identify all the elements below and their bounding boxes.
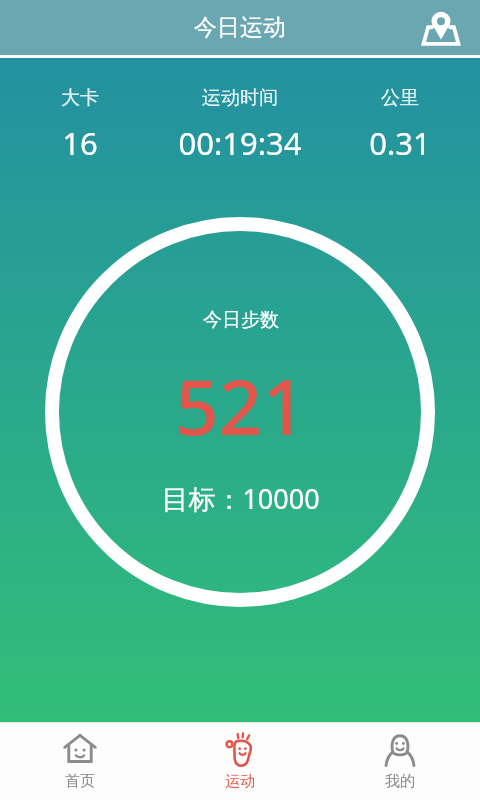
staticText: 公里 — [381, 86, 419, 110]
staticText: 521 — [175, 354, 306, 458]
button[interactable]: 运动 — [160, 723, 320, 800]
button[interactable]: 运动时间 — [160, 86, 320, 164]
button[interactable]: 我的 — [320, 723, 480, 800]
staticText: 大卡 — [61, 86, 99, 110]
staticText: 00:19:34 — [178, 122, 302, 164]
staticText: 16 — [62, 122, 98, 164]
staticText: 今日步数 — [203, 308, 279, 332]
staticText: 目标：10000 — [161, 480, 320, 517]
button[interactable]: Map — [418, 5, 464, 51]
button[interactable]: 首页 — [0, 723, 160, 800]
staticText: 今日运动 — [194, 13, 286, 42]
staticText: 0.31 — [369, 122, 431, 164]
staticText: 我的 — [385, 772, 415, 791]
staticText: 运动 — [225, 772, 255, 791]
button[interactable]: 大卡 — [0, 86, 160, 164]
staticText: 运动时间 — [202, 86, 278, 110]
button[interactable]: 公里 — [320, 86, 480, 164]
staticText: 首页 — [65, 772, 95, 791]
